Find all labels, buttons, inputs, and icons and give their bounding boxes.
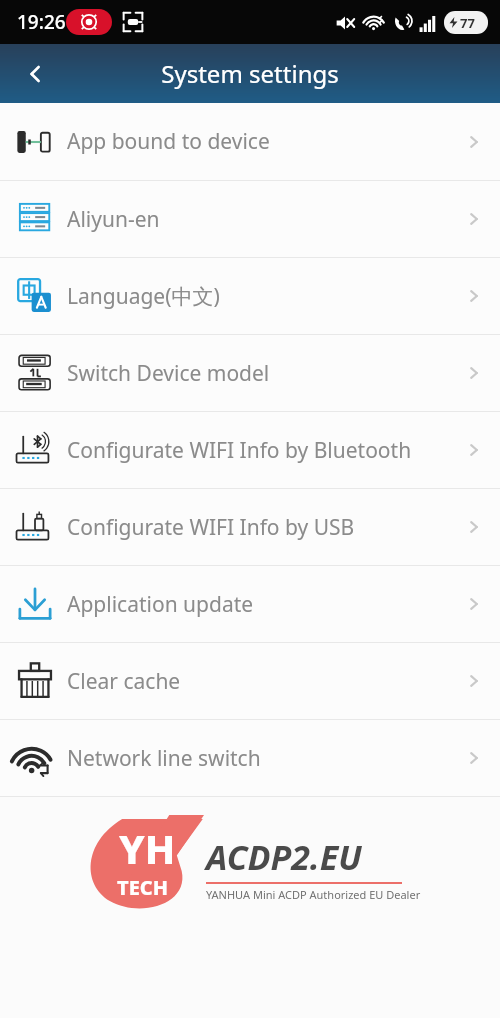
staticText: App bound to device bbox=[67, 127, 270, 156]
staticText: Configurate WIFI Info by USB bbox=[67, 513, 355, 542]
button[interactable]: Network line switch bbox=[0, 720, 500, 796]
button[interactable]: Back bbox=[9, 53, 63, 95]
button[interactable]: App bound to device bbox=[0, 103, 500, 180]
staticText: 19:26 bbox=[17, 9, 66, 35]
staticText: ACDP2.EU bbox=[206, 834, 362, 880]
button[interactable]: Language(中文) bbox=[0, 258, 500, 334]
staticText: Network line switch bbox=[67, 744, 261, 773]
staticText: System settings bbox=[161, 57, 339, 90]
staticText: 77 bbox=[460, 14, 475, 32]
staticText: YH bbox=[119, 821, 176, 875]
staticText: YANHUA Mini ACDP Authorized EU Dealer bbox=[206, 887, 421, 902]
button[interactable]: Configurate WIFI Info by Bluetooth bbox=[0, 412, 500, 488]
staticText: TECH bbox=[117, 874, 168, 901]
staticText: Language(中文) bbox=[67, 282, 220, 311]
staticText: Clear cache bbox=[67, 667, 181, 696]
staticText: Configurate WIFI Info by Bluetooth bbox=[67, 436, 412, 465]
staticText: Switch Device model bbox=[67, 359, 270, 388]
button[interactable]: Aliyun-en bbox=[0, 181, 500, 257]
button[interactable]: Application update bbox=[0, 566, 500, 642]
button[interactable]: Switch Device model bbox=[0, 335, 500, 411]
staticText: Application update bbox=[67, 590, 254, 619]
button[interactable]: Configurate WIFI Info by USB bbox=[0, 489, 500, 565]
button[interactable]: Clear cache bbox=[0, 643, 500, 719]
staticText: Aliyun-en bbox=[67, 205, 160, 234]
